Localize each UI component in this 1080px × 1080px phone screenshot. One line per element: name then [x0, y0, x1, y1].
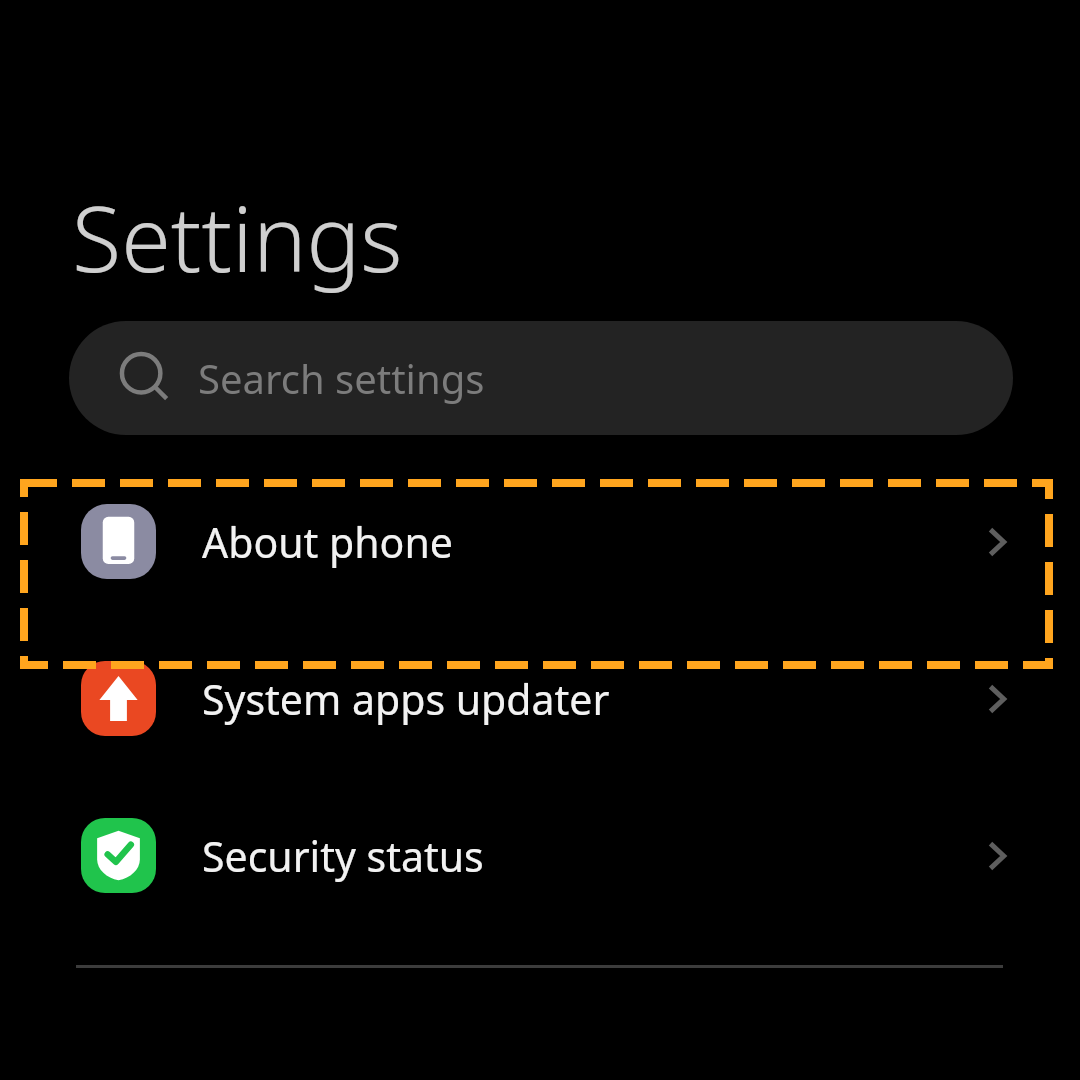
staticText: Settings: [72, 176, 403, 299]
staticText: Security status: [202, 828, 976, 884]
button[interactable]: System apps updater: [0, 620, 1080, 777]
other: Open: [976, 520, 1020, 564]
button[interactable]: Security status: [0, 777, 1080, 934]
staticText: About phone: [202, 514, 976, 570]
button[interactable]: Search settings: [69, 321, 1013, 435]
staticText: System apps updater: [202, 671, 976, 727]
other: Open: [976, 834, 1020, 878]
other: Open: [976, 677, 1020, 721]
button[interactable]: About phone: [0, 463, 1080, 620]
staticText: Search settings: [198, 351, 485, 405]
